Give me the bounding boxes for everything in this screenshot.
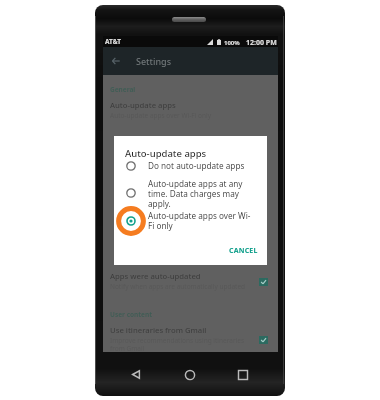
staticText: CANCEL [229,246,258,256]
staticText: General [110,85,136,94]
staticText: Auto-update apps at any time. Data charg… [148,178,260,210]
staticText: AT&T [105,37,121,46]
button[interactable]: Auto-update apps over Wi-Fi only [116,206,146,236]
staticText: Auto-update apps [125,147,207,160]
button[interactable]: Recents [233,365,252,384]
button[interactable]: Apps were auto-updated [103,271,278,295]
button[interactable]: Home [180,365,199,384]
button[interactable]: CANCEL [229,246,258,256]
staticText: Apps were auto-updated [110,271,201,281]
staticText: Improve recommendations using itinerarie… [110,336,245,353]
staticText: 100% [224,39,240,47]
staticText: Settings [136,55,172,67]
button[interactable]: Use itineraries from Gmail [103,325,278,349]
staticText: Auto-update apps [110,100,176,110]
staticText: User content [110,310,153,319]
staticText: 12:00 PM [246,38,277,48]
staticText: Do not auto-update apps [148,160,260,171]
button[interactable]: Navigate up [110,55,122,67]
staticText: Use itineraries from Gmail [110,325,207,335]
staticText: Auto-update apps over Wi- Fi only [148,210,260,232]
button[interactable]: Back [126,366,145,383]
